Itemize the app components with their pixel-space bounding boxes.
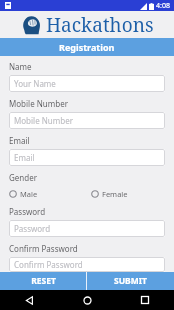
staticText: Mobile Number	[14, 115, 73, 126]
staticText: RESET	[31, 275, 56, 287]
staticText: Name	[9, 61, 32, 72]
button[interactable]: Female	[91, 188, 128, 200]
button[interactable]: SUBMIT	[87, 272, 174, 290]
staticText: Password	[14, 223, 51, 234]
staticText: Email	[9, 135, 30, 146]
staticText: Email	[14, 152, 35, 163]
staticText: Registration	[59, 41, 115, 53]
staticText: 4:08	[156, 1, 170, 11]
staticText: Mobile Number	[9, 98, 68, 109]
button[interactable]: RESET	[0, 272, 86, 290]
button[interactable]: Email	[9, 149, 165, 166]
staticText: Female	[102, 189, 128, 199]
staticText: Your Name	[14, 78, 56, 89]
button[interactable]: Male	[9, 188, 91, 200]
button[interactable]: Password	[9, 220, 165, 237]
button[interactable]: Mobile Number	[9, 112, 165, 129]
staticText: SUBMIT	[114, 275, 147, 287]
button[interactable]: Recent apps	[116, 290, 174, 310]
button[interactable]: Back	[0, 290, 58, 310]
staticText: Confirm Password	[14, 259, 83, 270]
staticText: Hackathons	[46, 12, 154, 38]
button[interactable]: Your Name	[9, 75, 165, 92]
staticText: Gender	[9, 172, 38, 183]
staticText: Male	[20, 189, 38, 199]
staticText: Password	[9, 206, 46, 217]
button[interactable]: Confirm Password	[9, 257, 165, 272]
button[interactable]: Home	[58, 290, 116, 310]
staticText: Confirm Password	[9, 243, 78, 254]
